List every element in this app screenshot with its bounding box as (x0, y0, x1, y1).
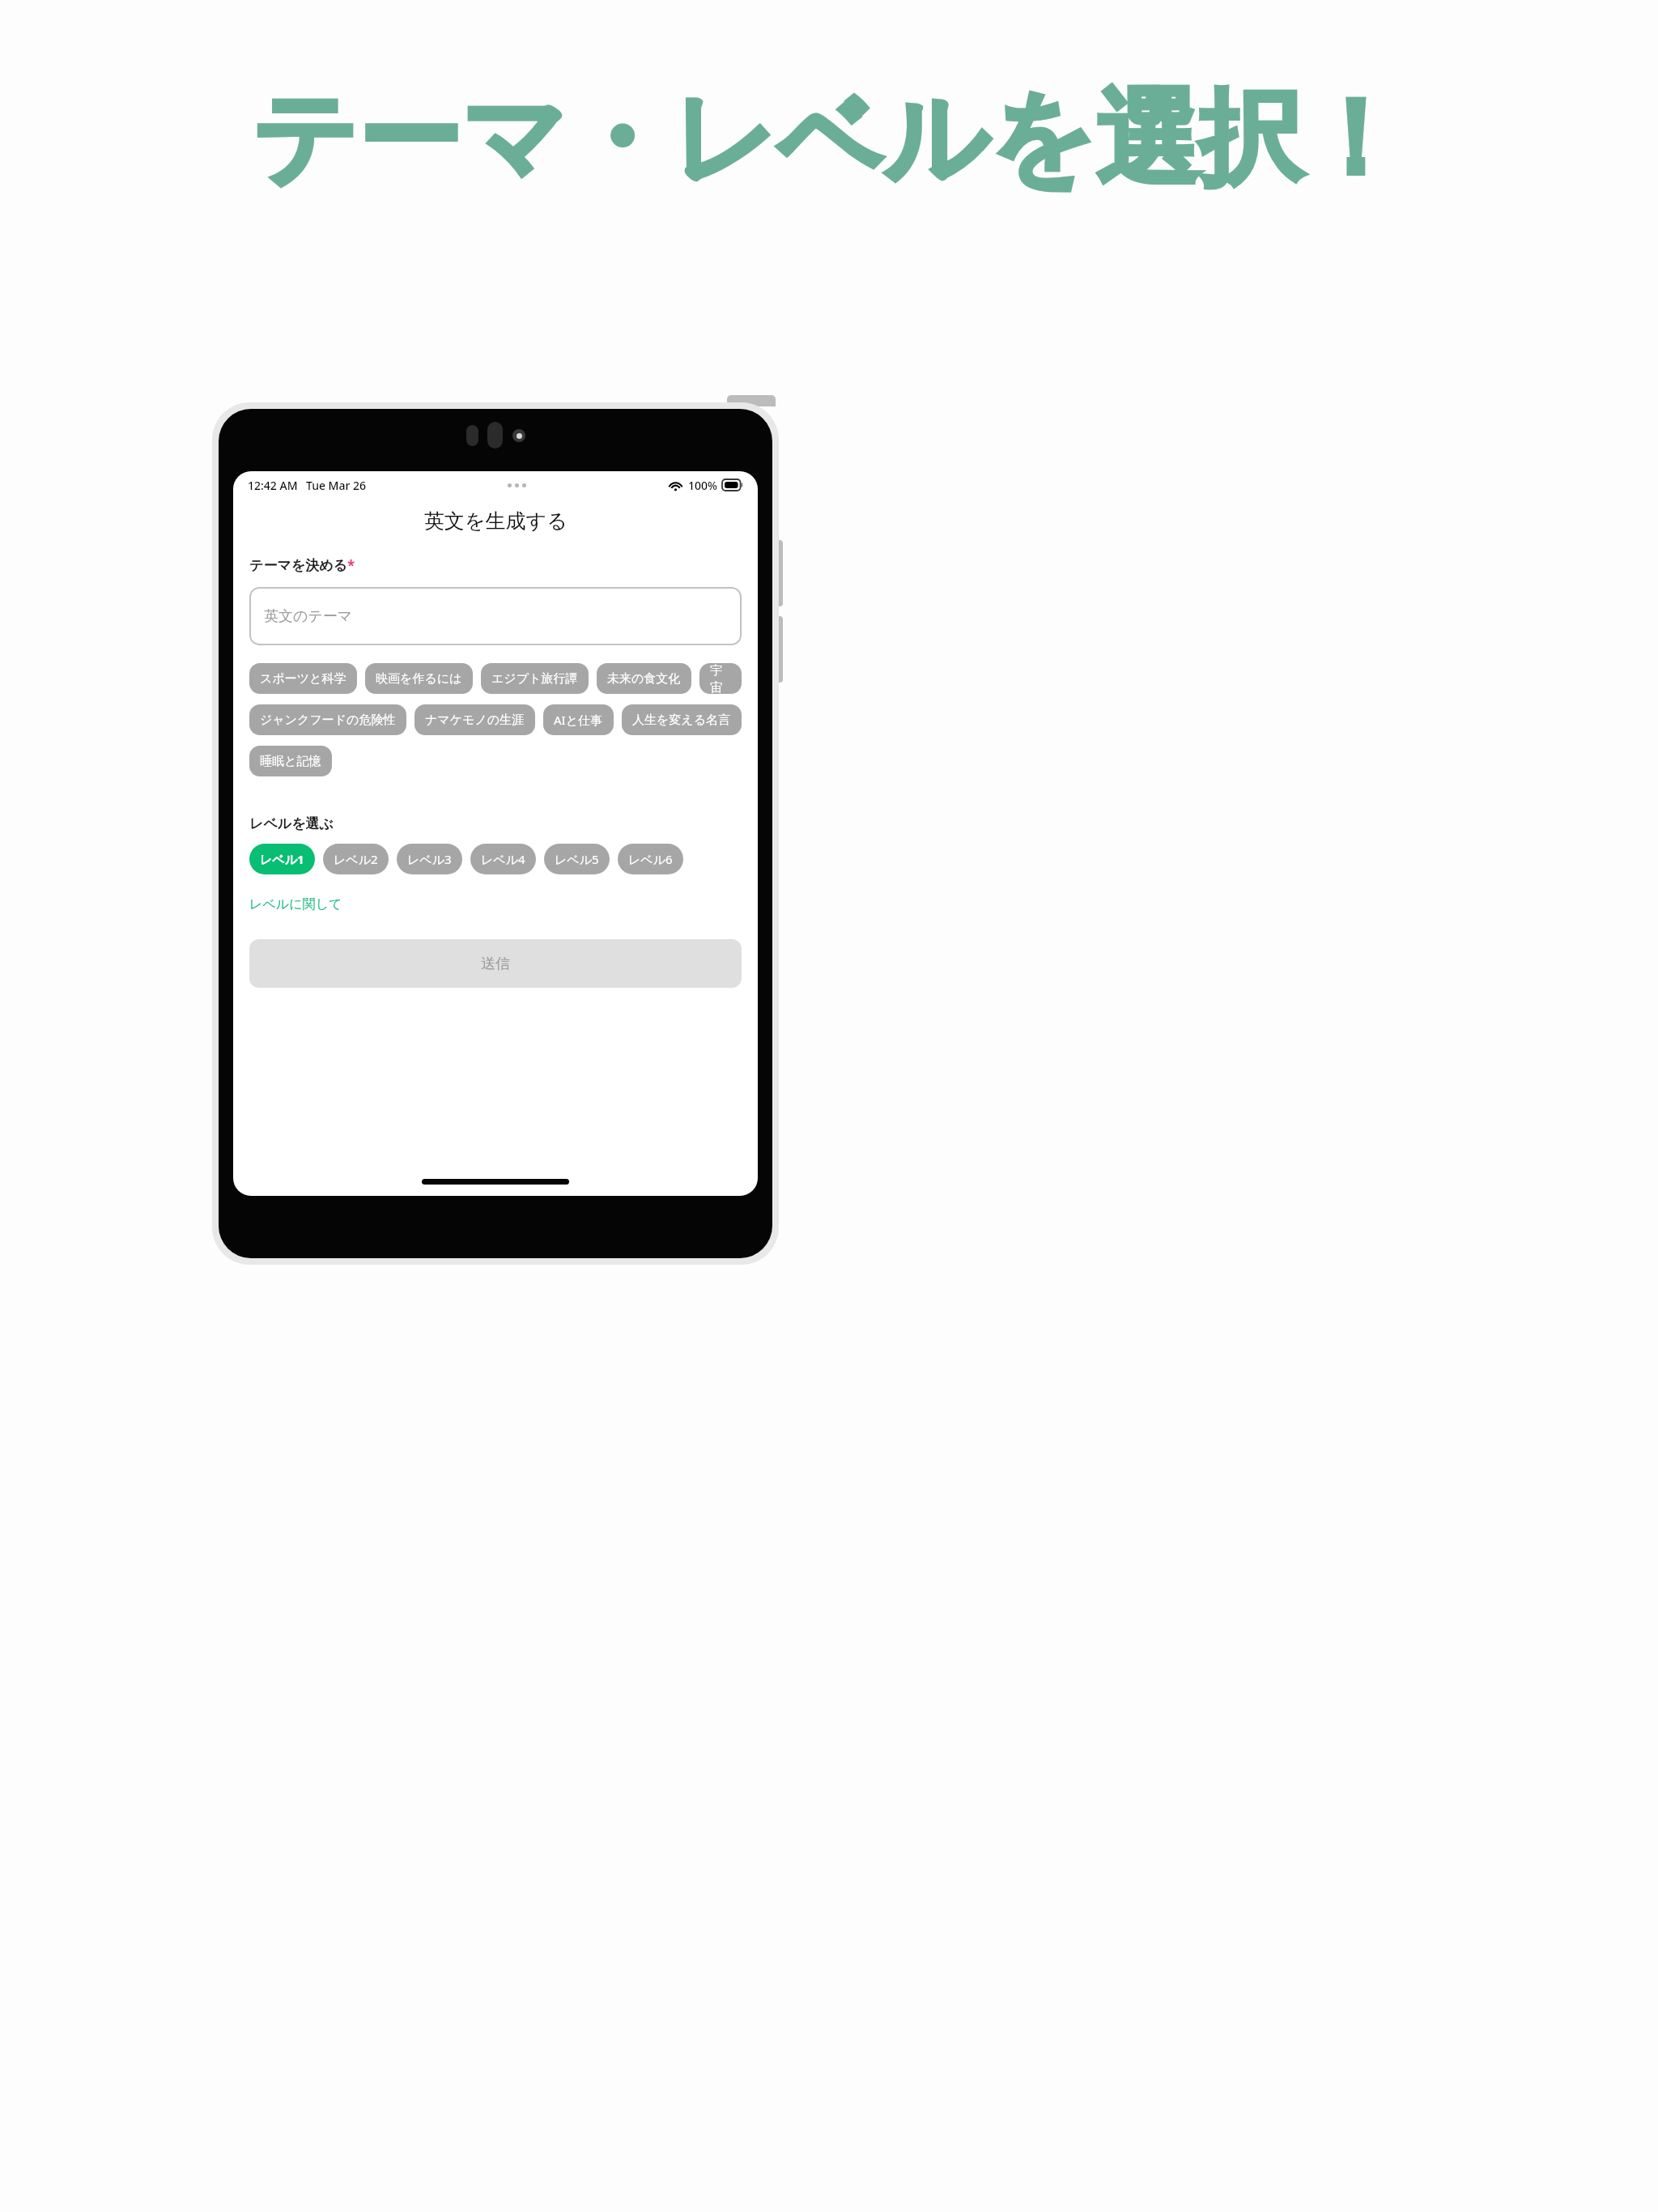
button[interactable]: 英文のテーマ (249, 587, 742, 645)
button[interactable]: レベル2 (323, 844, 389, 874)
staticText: 送信 (481, 955, 510, 973)
button[interactable]: レベル5 (544, 844, 610, 874)
staticText: ジャンクフードの危険性 (260, 713, 396, 728)
staticText: AIと仕事 (554, 712, 603, 728)
staticText: ナマケモノの生涯 (425, 713, 525, 728)
staticText: テーマ・レベルを選択！ (252, 74, 1406, 205)
staticText: レベル6 (628, 851, 673, 867)
button[interactable]: レベル1 (249, 844, 315, 874)
button[interactable]: AIと仕事 (543, 704, 614, 735)
button[interactable]: レベル3 (397, 844, 462, 874)
staticText: レベル4 (481, 851, 525, 867)
button[interactable]: 睡眠と記憶 (249, 746, 332, 776)
button[interactable]: レベルに関して (249, 894, 342, 915)
button[interactable]: レベル6 (618, 844, 683, 874)
staticText: 英文のテーマ (264, 607, 353, 626)
button[interactable]: 送信 (249, 939, 742, 988)
staticText: * (347, 556, 355, 575)
staticText: 睡眠と記憶 (260, 754, 321, 769)
staticText: 宇宙人と仲良くなるコツ (710, 663, 731, 694)
staticText: 英文を生成する (424, 508, 568, 534)
staticText: レベルに関して (249, 896, 342, 912)
other: Wi-Fi (668, 478, 683, 493)
button[interactable]: 未来の食文化 (597, 663, 691, 694)
staticText: レベル5 (555, 851, 599, 867)
staticText: Tue Mar 26 (306, 478, 367, 493)
button[interactable]: エジプト旅行譚 (481, 663, 589, 694)
staticText: エジプト旅行譚 (491, 671, 578, 687)
button[interactable]: 人生を変える名言 (622, 704, 742, 735)
staticText: 人生を変える名言 (632, 713, 731, 728)
staticText: レベル2 (334, 851, 378, 867)
button[interactable]: 宇宙人と仲良くなるコツ (699, 663, 742, 694)
staticText: 映画を作るには (376, 671, 462, 687)
staticText: レベル1 (260, 851, 304, 867)
button[interactable]: 映画を作るには (365, 663, 473, 694)
staticText: レベル3 (407, 851, 452, 867)
staticText: 未来の食文化 (607, 671, 681, 687)
other: Battery full (722, 479, 743, 491)
button[interactable]: レベル4 (470, 844, 536, 874)
button[interactable]: ナマケモノの生涯 (414, 704, 535, 735)
button[interactable]: ジャンクフードの危険性 (249, 704, 406, 735)
staticText: 12:42 AM (248, 478, 298, 493)
staticText: 100% (688, 478, 717, 493)
button[interactable]: スポーツと科学 (249, 663, 357, 694)
staticText: テーマを決める (249, 557, 347, 574)
staticText: スポーツと科学 (260, 671, 346, 687)
staticText: レベルを選ぶ (249, 815, 334, 832)
